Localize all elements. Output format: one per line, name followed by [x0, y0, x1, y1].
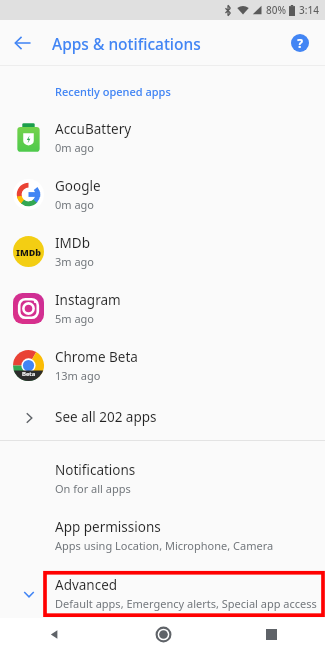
button[interactable]: Expand advanced: [0, 569, 325, 618]
staticText: Apps using Location, Microphone, Camera: [55, 538, 274, 553]
staticText: Google: [55, 177, 101, 195]
button[interactable]: Back: [0, 618, 109, 650]
button[interactable]: Google: [0, 166, 325, 223]
button[interactable]: IMDb: [0, 223, 325, 280]
staticText: Notifications: [55, 461, 136, 479]
button[interactable]: AccuBattery: [0, 109, 325, 166]
staticText: 3m ago: [55, 254, 95, 269]
button[interactable]: Beta: [0, 337, 325, 394]
staticText: IMDb: [16, 246, 42, 258]
staticText: 0m ago: [55, 197, 95, 212]
staticText: 5m ago: [55, 311, 95, 326]
staticText: Beta: [22, 370, 36, 378]
other: Expand advanced: [13, 578, 44, 609]
staticText: 0m ago: [55, 140, 95, 155]
staticText: Advanced: [55, 576, 118, 594]
staticText: 3:14: [299, 3, 319, 17]
button[interactable]: Notifications: [0, 455, 325, 512]
staticText: Chrome Beta: [55, 348, 138, 366]
staticText: See all 202 apps: [55, 408, 157, 426]
staticText: 80%: [266, 3, 286, 17]
staticText: Apps & notifications: [52, 33, 201, 54]
staticText: Default apps, Emergency alerts, Special …: [55, 596, 317, 611]
button[interactable]: App permissions: [0, 512, 325, 569]
staticText: Recently opened apps: [55, 84, 171, 99]
staticText: Instagram: [55, 291, 121, 309]
button[interactable]: See all 202 apps: [0, 394, 325, 440]
button[interactable]: Help: [277, 20, 323, 66]
staticText: AccuBattery: [55, 120, 132, 138]
button[interactable]: Instagram: [0, 280, 325, 337]
button[interactable]: Recent apps: [217, 618, 325, 650]
staticText: IMDb: [55, 234, 90, 252]
staticText: 13m ago: [55, 368, 101, 383]
staticText: ?: [297, 35, 303, 51]
button[interactable]: Back: [0, 20, 46, 66]
staticText: On for all apps: [55, 481, 131, 496]
button[interactable]: Home: [109, 618, 217, 650]
staticText: App permissions: [55, 518, 161, 536]
